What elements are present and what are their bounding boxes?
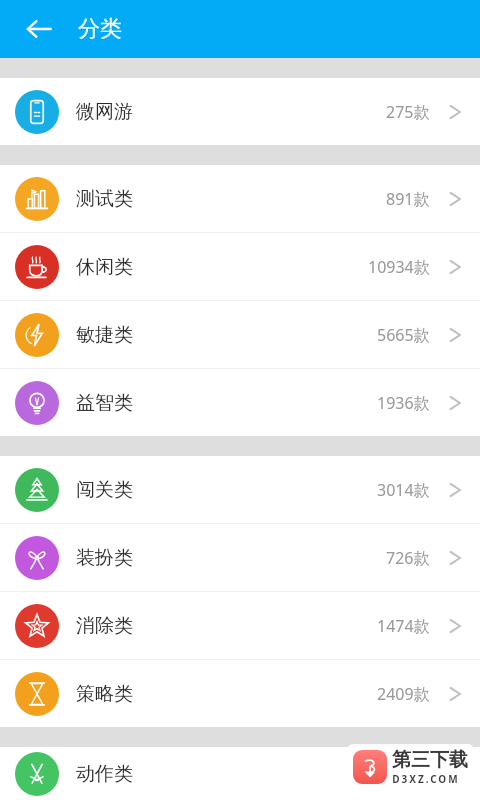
button[interactable]: 休闲类 [0,233,480,300]
staticText: 测试类 [76,187,133,211]
button[interactable]: 消除类 [0,592,480,659]
staticText: 2409款 [377,683,430,705]
button[interactable]: 益智类 [0,369,480,436]
staticText: 策略类 [76,682,133,706]
staticText: 益智类 [76,391,133,415]
staticText: 275款 [386,101,430,123]
button[interactable]: 测试类 [0,165,480,232]
staticText: 消除类 [76,614,133,638]
button[interactable]: 微网游 [0,78,480,145]
staticText: D3XZ.COM [392,772,460,786]
staticText: 分类 [78,15,122,43]
staticText: 装扮类 [76,546,133,570]
staticText: 1474款 [377,615,430,637]
staticText: 微网游 [76,100,133,124]
button[interactable]: 装扮类 [0,524,480,591]
button[interactable]: 策略类 [0,660,480,727]
staticText: 891款 [386,188,430,210]
button[interactable]: 敏捷类 [0,301,480,368]
staticText: 休闲类 [76,255,133,279]
button[interactable]: 动作类 [0,747,480,800]
staticText: 5665款 [377,324,430,346]
staticText: 敏捷类 [76,323,133,347]
staticText: 3014款 [377,479,430,501]
button[interactable]: 闯关类 [0,456,480,523]
staticText: 726款 [386,547,430,569]
staticText: 10934款 [368,256,430,278]
staticText: 第三下载 [392,748,468,772]
button[interactable]: Back [14,4,64,54]
staticText: 闯关类 [76,478,133,502]
staticText: 1936款 [377,392,430,414]
staticText: 动作类 [76,762,133,786]
